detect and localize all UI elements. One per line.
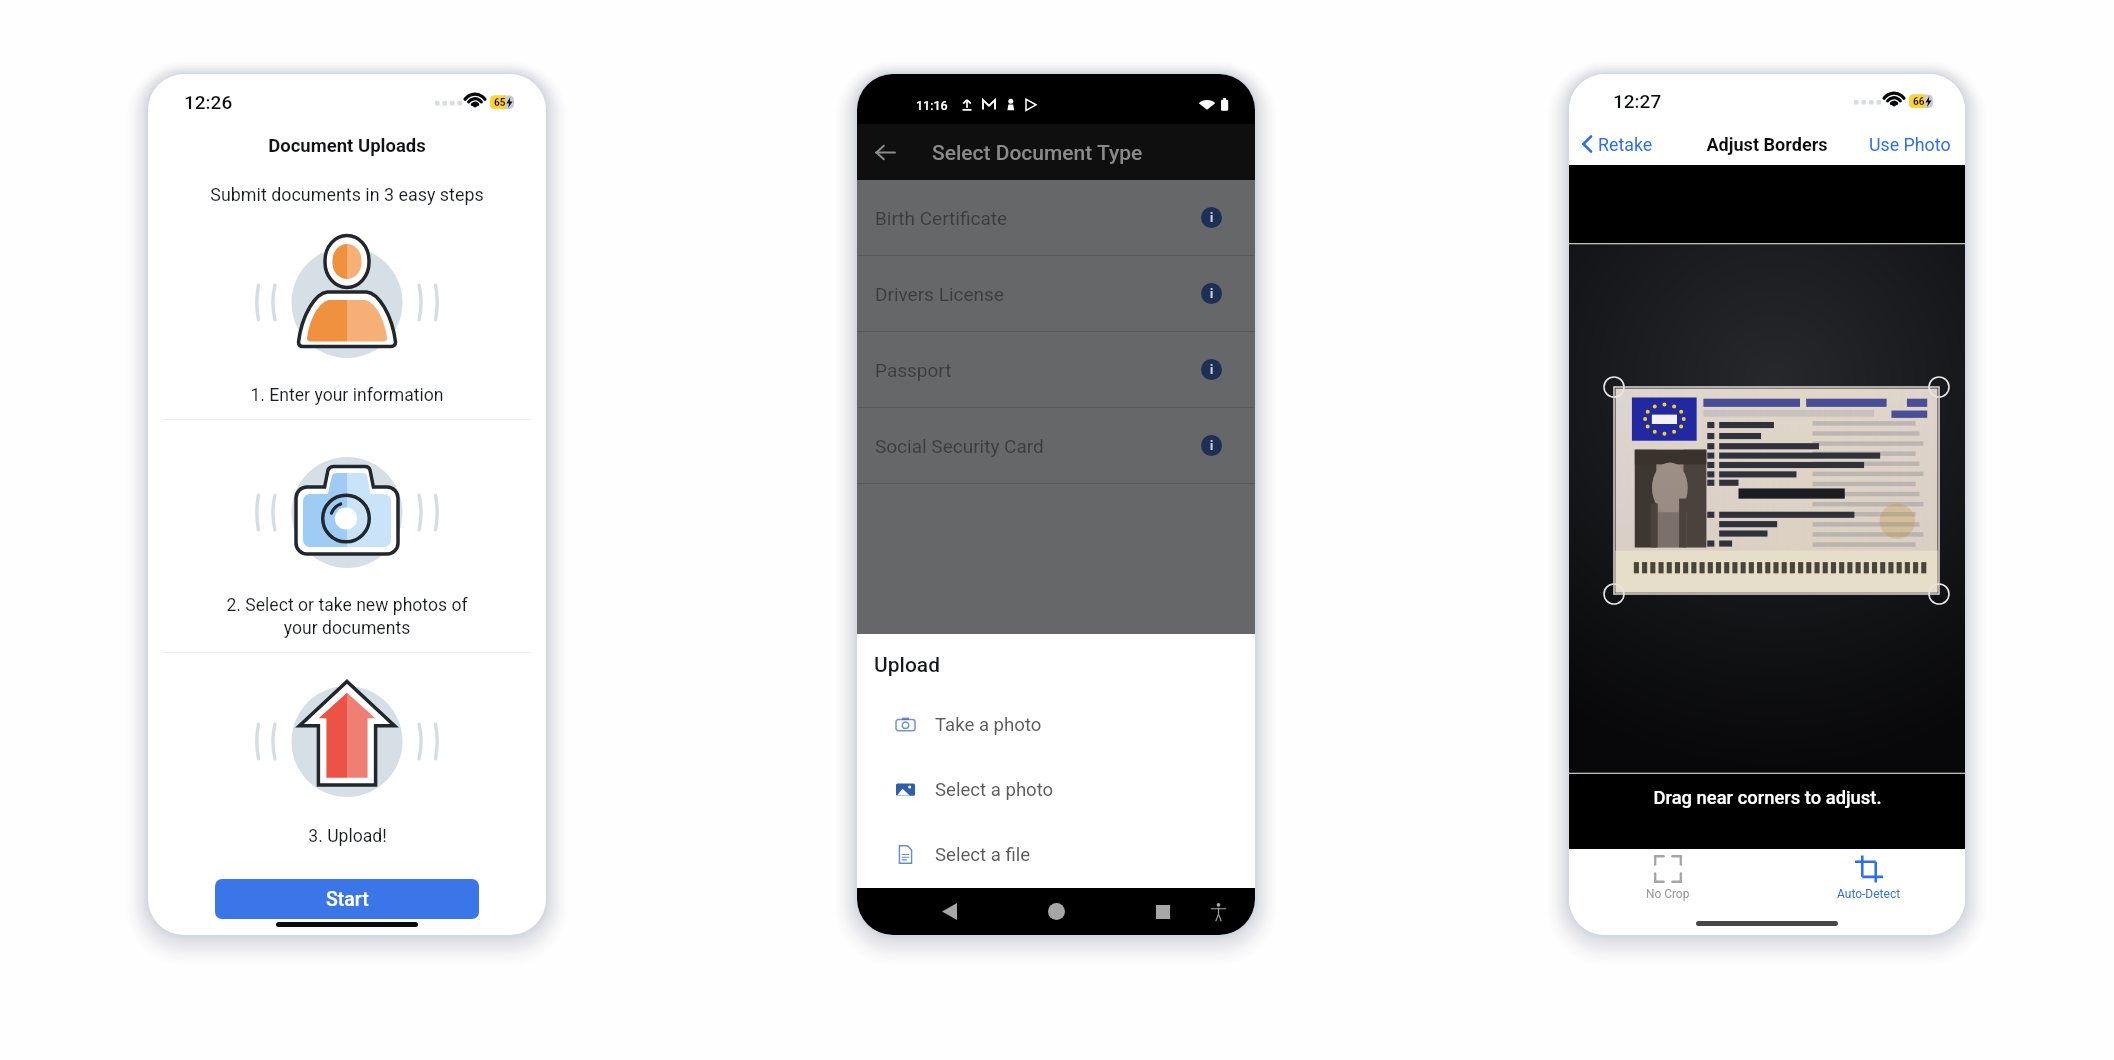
staticText: 66 [1913, 96, 1925, 108]
staticText: Drivers License [875, 283, 1004, 305]
staticText: 3. Upload! [308, 826, 387, 847]
staticText: Use Photo [1869, 134, 1951, 155]
button[interactable]: Recent apps [1133, 888, 1193, 935]
button[interactable]: Select a file [857, 829, 1255, 881]
button[interactable]: Start [215, 879, 479, 919]
staticText: Social Security Card [875, 435, 1044, 457]
staticText: Take a photo [935, 714, 1042, 736]
button[interactable]: Home [1026, 888, 1086, 935]
button[interactable]: Back [919, 888, 979, 935]
staticText: 11:16 [916, 98, 948, 113]
button[interactable]: Use Photo [1869, 130, 1951, 158]
button[interactable]: Passport [857, 332, 1255, 408]
staticText: i [1210, 363, 1214, 377]
staticText: Document Uploads [268, 135, 426, 157]
staticText: 12:26 [184, 91, 233, 113]
staticText: Auto-Detect [1837, 887, 1901, 901]
staticText: Passport [875, 359, 952, 381]
staticText: 65 [494, 97, 506, 109]
staticText: Submit documents in 3 easy steps [210, 184, 484, 205]
button[interactable]: Birth Certificate [857, 180, 1255, 256]
button[interactable]: Accessibility [1193, 888, 1243, 935]
button[interactable]: Info [1201, 435, 1222, 456]
staticText: i [1210, 287, 1214, 301]
button[interactable]: Take a photo [857, 699, 1255, 751]
button[interactable]: Select a photo [857, 764, 1255, 816]
button[interactable]: Info [1201, 207, 1222, 228]
staticText: Select Document Type [932, 141, 1143, 165]
staticText: Select a file [935, 844, 1031, 866]
button[interactable]: Social Security Card [857, 408, 1255, 484]
staticText: Adjust Borders [1706, 134, 1828, 155]
staticText: No Crop [1646, 887, 1690, 901]
staticText: Start [326, 888, 369, 911]
staticText: Drag near corners to adjust. [1653, 787, 1882, 809]
button[interactable]: Back [862, 129, 908, 175]
staticText: Birth Certificate [875, 207, 1008, 229]
button[interactable]: No Crop [1608, 855, 1728, 917]
staticText: i [1210, 211, 1214, 225]
button[interactable]: Info [1201, 283, 1222, 304]
staticText: 1. Enter your information [250, 385, 444, 406]
staticText: 2. Select or take new photos of your doc… [226, 595, 468, 639]
staticText: Upload [874, 653, 940, 677]
staticText: i [1210, 439, 1214, 453]
staticText: Retake [1598, 134, 1653, 155]
button[interactable]: Drivers License [857, 256, 1255, 332]
staticText: 12:27 [1613, 90, 1662, 112]
button[interactable]: Retake [1582, 130, 1653, 158]
button[interactable]: Auto-Detect [1809, 855, 1929, 917]
staticText: Select a photo [935, 779, 1054, 801]
button[interactable]: Info [1201, 359, 1222, 380]
